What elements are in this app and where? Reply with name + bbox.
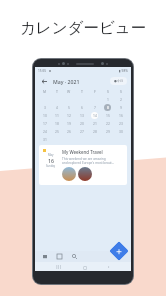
staticText: 10 xyxy=(43,113,47,117)
staticText: 15 xyxy=(106,113,110,117)
staticText: S xyxy=(107,89,109,94)
staticText: F xyxy=(94,89,96,94)
staticText: 11 xyxy=(55,113,59,117)
staticText: 16 xyxy=(48,157,54,164)
staticText: 25 xyxy=(55,129,59,133)
button[interactable]: 29 xyxy=(101,127,114,135)
button[interactable]: 3 xyxy=(39,103,51,111)
staticText: M xyxy=(43,89,47,94)
button[interactable]: 27 xyxy=(75,127,88,135)
staticText: 22 xyxy=(106,121,110,125)
staticText: 14 xyxy=(93,113,97,117)
button[interactable]: Back xyxy=(39,76,49,86)
staticText: 28 xyxy=(93,129,97,133)
staticText: 8 xyxy=(107,105,109,109)
button[interactable]: 12 xyxy=(63,111,75,119)
staticText: 30 xyxy=(119,129,123,133)
button[interactable]: 25 xyxy=(51,127,63,135)
button[interactable]: 20 xyxy=(75,119,88,127)
staticText: and explored Europe's most beaut… xyxy=(62,161,115,165)
staticText: ‹ xyxy=(108,264,110,270)
staticText: 15:55 xyxy=(38,69,47,73)
staticText: T xyxy=(81,89,83,94)
staticText: T xyxy=(56,89,58,94)
button[interactable]: 9 xyxy=(114,103,127,111)
button[interactable]: 21 xyxy=(88,119,101,127)
button[interactable]: ●今日 xyxy=(110,77,127,85)
staticText: 23 xyxy=(119,121,123,125)
button[interactable]: 6 xyxy=(75,103,88,111)
button[interactable]: 19 xyxy=(63,119,75,127)
staticText: 29 xyxy=(106,129,110,133)
button[interactable]: May xyxy=(39,145,127,185)
staticText: 3 xyxy=(44,105,46,109)
button[interactable]: 2 xyxy=(114,95,127,103)
staticText: 17 xyxy=(43,121,47,125)
button[interactable]: 11 xyxy=(51,111,63,119)
button[interactable]: 13 xyxy=(75,111,88,119)
staticText: May xyxy=(48,153,54,157)
staticText: W xyxy=(67,89,71,94)
staticText: 18 xyxy=(55,121,59,125)
button[interactable]: 24 xyxy=(39,127,51,135)
button[interactable]: 8 xyxy=(101,103,114,111)
staticText: ||| xyxy=(56,264,62,269)
staticText: 5 xyxy=(68,105,70,109)
staticText: 31 xyxy=(43,137,47,141)
staticText: My Weekend Travel xyxy=(62,149,103,155)
staticText: ▮ 98% xyxy=(119,69,128,73)
button[interactable]: Calendar xyxy=(55,252,64,261)
button[interactable]: 31 xyxy=(39,135,51,143)
staticText: May · 2021 xyxy=(53,78,80,85)
staticText: カレンダービュー xyxy=(20,18,147,38)
staticText: 26 xyxy=(67,129,71,133)
staticText: 4 xyxy=(56,105,58,109)
button[interactable]: 15 xyxy=(101,111,114,119)
button[interactable]: 5 xyxy=(63,103,75,111)
button[interactable]: 23 xyxy=(114,119,127,127)
button[interactable]: 14 xyxy=(88,111,101,119)
staticText: 7 xyxy=(94,105,96,109)
button[interactable]: 10 xyxy=(39,111,51,119)
button[interactable]: Menu xyxy=(40,252,49,261)
button[interactable]: 30 xyxy=(114,127,127,135)
button[interactable]: 16 xyxy=(114,111,127,119)
staticText: 2 xyxy=(120,97,122,101)
button[interactable]: Search xyxy=(70,252,79,261)
staticText: 6 xyxy=(81,105,83,109)
button[interactable]: Add event xyxy=(109,241,129,261)
button[interactable]: 7 xyxy=(88,103,101,111)
staticText: 13 xyxy=(80,113,84,117)
staticText: 12 xyxy=(67,113,71,117)
staticText: This weekend we are amazing xyxy=(62,157,106,161)
button[interactable]: 17 xyxy=(39,119,51,127)
staticText: 20 xyxy=(80,121,84,125)
button[interactable]: 18 xyxy=(51,119,63,127)
staticText: ●今日 xyxy=(114,79,124,83)
staticText: 1 xyxy=(107,97,109,101)
staticText: S xyxy=(120,89,122,94)
button[interactable]: 4 xyxy=(51,103,63,111)
staticText: 24 xyxy=(43,129,47,133)
staticText: Sunday xyxy=(46,164,56,168)
button[interactable]: 1 xyxy=(101,95,114,103)
staticText: 16 xyxy=(119,113,123,117)
button[interactable]: 28 xyxy=(88,127,101,135)
button[interactable]: 26 xyxy=(63,127,75,135)
staticText: 27 xyxy=(80,129,84,133)
staticText: 21 xyxy=(93,121,97,125)
staticText: 19 xyxy=(67,121,71,125)
staticText: ◯ xyxy=(83,265,88,269)
button[interactable]: 22 xyxy=(101,119,114,127)
